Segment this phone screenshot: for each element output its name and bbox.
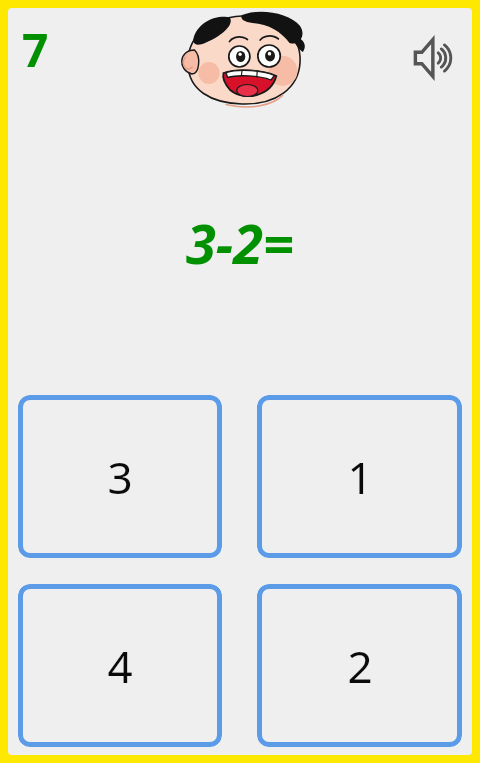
button[interactable]: Sound bbox=[408, 30, 466, 86]
button[interactable]: 4 bbox=[18, 584, 222, 747]
button[interactable]: 1 bbox=[257, 395, 462, 558]
staticText: 7 bbox=[22, 18, 49, 80]
button[interactable]: 2 bbox=[257, 584, 462, 747]
staticText: 3-2= bbox=[186, 206, 294, 278]
staticText: 4 bbox=[107, 636, 133, 696]
button[interactable]: 3 bbox=[18, 395, 222, 558]
button[interactable]: 7 bbox=[22, 18, 82, 80]
staticText: 1 bbox=[347, 447, 373, 507]
staticText: 2 bbox=[347, 636, 373, 696]
staticText: 3 bbox=[107, 447, 133, 507]
